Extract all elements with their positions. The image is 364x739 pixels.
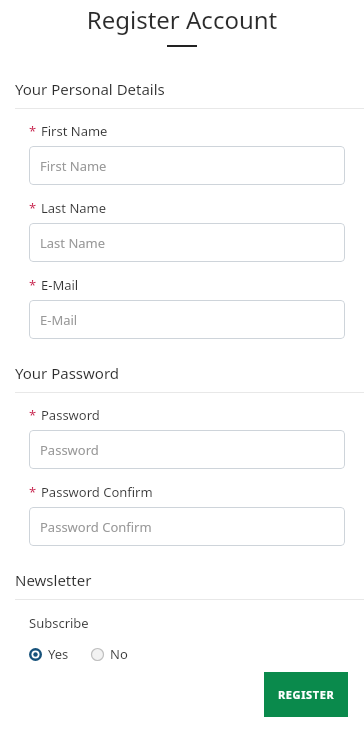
staticText: * xyxy=(29,122,37,140)
staticText: E-Mail xyxy=(40,311,78,329)
staticText: Yes xyxy=(48,645,69,663)
button[interactable]: REGISTER xyxy=(264,672,348,717)
staticText: Your Password xyxy=(15,363,120,383)
staticText: E-Mail xyxy=(41,276,79,294)
button[interactable]: Last Name xyxy=(29,223,345,262)
staticText: First Name xyxy=(41,122,108,140)
staticText: Last Name xyxy=(40,234,106,252)
staticText: Password Confirm xyxy=(40,518,152,536)
staticText: * xyxy=(29,483,37,501)
staticText: First Name xyxy=(40,157,107,175)
button[interactable]: E-Mail xyxy=(29,300,345,339)
button[interactable]: Password xyxy=(29,430,345,469)
staticText: Last Name xyxy=(41,199,107,217)
staticText: No xyxy=(110,645,128,663)
staticText: Register Account xyxy=(0,3,364,36)
staticText: Your Personal Details xyxy=(15,79,165,99)
staticText: Subscribe xyxy=(29,614,89,632)
staticText: Password Confirm xyxy=(41,483,153,501)
staticText: * xyxy=(29,199,37,217)
staticText: Newsletter xyxy=(15,570,92,590)
staticText: Password xyxy=(41,406,100,424)
staticText: * xyxy=(29,406,37,424)
button[interactable]: First Name xyxy=(29,146,345,185)
button[interactable]: Password Confirm xyxy=(29,507,345,546)
button[interactable]: No xyxy=(91,645,128,663)
staticText: * xyxy=(29,276,37,294)
button[interactable]: Yes xyxy=(29,645,69,663)
staticText: REGISTER xyxy=(278,687,335,702)
staticText: Password xyxy=(40,441,99,459)
